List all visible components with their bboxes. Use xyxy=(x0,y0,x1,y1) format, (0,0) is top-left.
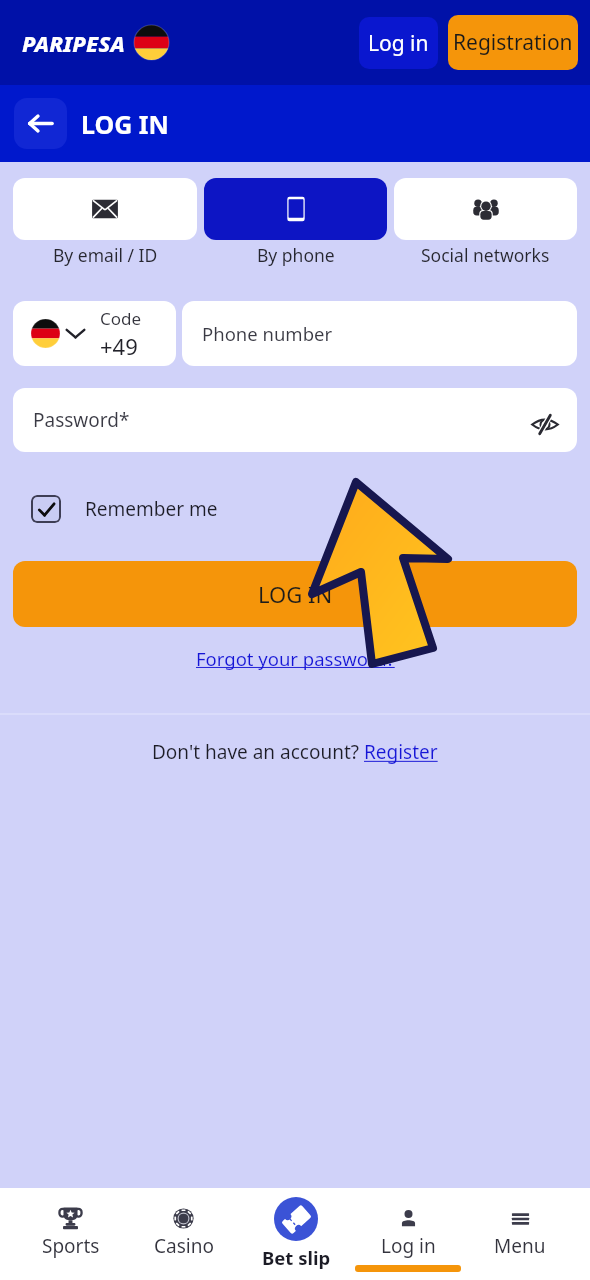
button[interactable]: Bet slip xyxy=(240,1188,352,1280)
staticText: Password* xyxy=(33,407,130,433)
staticText: PARIPESA xyxy=(22,28,125,58)
button[interactable]: Password* xyxy=(13,388,577,452)
button[interactable]: Log in xyxy=(359,17,438,69)
staticText: LOG IN xyxy=(81,107,169,141)
button[interactable]: Show password xyxy=(527,406,563,442)
staticText: By email / ID xyxy=(53,243,158,267)
staticText: Sports xyxy=(42,1233,100,1259)
button[interactable]: Registration xyxy=(448,15,578,70)
button[interactable]: Log in xyxy=(352,1188,464,1280)
button[interactable]: Code xyxy=(13,301,176,366)
button[interactable]: By phone xyxy=(204,178,387,267)
staticText: Log in xyxy=(368,29,429,58)
staticText: Register xyxy=(364,739,438,765)
button[interactable]: Forgot your password? xyxy=(196,646,395,671)
button[interactable]: Remember me xyxy=(31,495,218,523)
staticText: Code xyxy=(100,307,142,330)
staticText: Menu xyxy=(494,1233,546,1259)
staticText: By phone xyxy=(257,243,335,267)
button[interactable]: Back xyxy=(14,98,67,149)
staticText: Registration xyxy=(453,28,573,57)
staticText: Don't have an account? xyxy=(152,739,364,765)
button[interactable]: By email / ID xyxy=(13,178,197,267)
staticText: Bet slip xyxy=(262,1245,331,1270)
staticText: Social networks xyxy=(421,243,550,267)
button[interactable]: Sports xyxy=(14,1188,127,1280)
button[interactable]: Social networks xyxy=(394,178,577,267)
button[interactable]: LOG IN xyxy=(13,561,577,627)
staticText: Forgot your password? xyxy=(196,646,395,671)
button[interactable]: Phone number xyxy=(182,301,577,366)
staticText: LOG IN xyxy=(258,579,333,609)
button[interactable]: Casino xyxy=(127,1188,240,1280)
staticText: Phone number xyxy=(202,321,333,346)
staticText: +49 xyxy=(100,331,138,361)
staticText: Log in xyxy=(381,1233,436,1259)
button[interactable]: Menu xyxy=(464,1188,576,1280)
staticText: Remember me xyxy=(85,496,218,522)
button[interactable]: Register xyxy=(364,739,438,765)
staticText: Casino xyxy=(154,1233,214,1259)
